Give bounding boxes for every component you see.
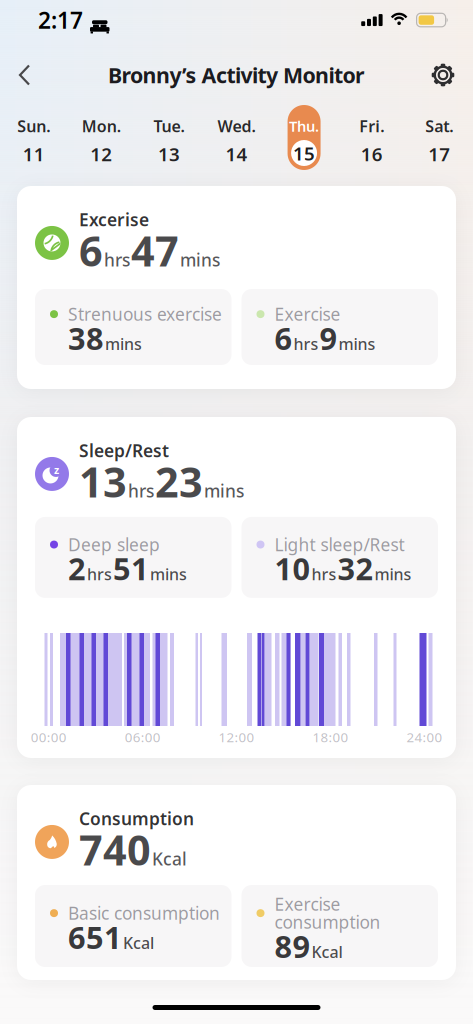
staticText: 89 [274,926,310,966]
staticText: hrs [293,333,318,354]
staticText: 18:00 [313,728,349,746]
staticText: 32 [337,548,373,589]
button[interactable]: Sat. [405,96,473,186]
staticText: hrs [104,248,130,271]
staticText: Excerise [79,208,149,231]
staticText: 740 [79,822,151,877]
staticText: 47 [131,223,179,278]
button[interactable]: Thu. [270,96,338,186]
staticText: mins [338,333,375,354]
staticText: Mon. [82,115,121,137]
button[interactable]: Wed. [203,96,270,186]
staticText: 10 [274,548,310,589]
staticText: 2:17 [38,5,83,35]
staticText: mins [374,563,411,585]
staticText: 51 [113,548,149,589]
button[interactable]: Mon. [68,96,135,186]
staticText: Fri. [359,115,384,137]
staticText: 9 [319,318,337,358]
button[interactable] [431,63,473,87]
staticText: hrs [87,563,112,585]
staticText: hrs [311,563,336,585]
staticText: Exercise consumption [274,893,380,934]
staticText: Sat. [425,115,453,137]
staticText: 651 [68,917,122,957]
staticText: 06:00 [125,728,161,746]
staticText: Thu. [289,116,319,136]
staticText: mins [150,563,187,585]
staticText: 12:00 [219,728,255,746]
staticText: 13 [79,454,127,509]
staticText: 00:00 [31,728,67,746]
staticText: 15 [293,141,315,166]
button[interactable]: Tue. [135,96,203,186]
staticText: Basic consumption [68,902,220,925]
staticText: Consumption [79,807,194,830]
staticText: Tue. [153,115,184,137]
staticText: 17 [428,142,450,166]
staticText: Kcal [152,847,187,870]
staticText: Kcal [123,932,154,953]
staticText: 23 [155,454,203,509]
staticText: 11 [23,142,45,166]
staticText: Bronny’s Activity Monitor [108,61,365,89]
staticText: mins [204,479,244,502]
staticText: 13 [158,142,180,166]
staticText: 16 [361,142,383,166]
button[interactable]: Sun. [0,96,68,186]
staticText: Strenuous exercise [68,303,222,326]
staticText: 38 [68,318,104,358]
staticText: Wed. [217,115,255,137]
staticText: Light sleep/Rest [274,533,404,556]
button[interactable] [0,64,30,85]
staticText: hrs [128,479,154,502]
staticText: 24:00 [407,728,443,746]
staticText: 6 [79,223,103,278]
staticText: mins [180,248,220,271]
staticText: mins [105,333,142,354]
staticText: Sleep/Rest [79,439,169,462]
staticText: 6 [274,318,292,358]
staticText: Deep sleep [68,533,160,556]
staticText: Sun. [17,115,50,137]
staticText: 14 [225,142,247,166]
staticText: 12 [90,142,112,166]
staticText: 2 [68,548,86,589]
staticText: Kcal [311,941,342,962]
staticText: z [54,463,59,477]
staticText: Exercise [274,303,340,326]
button[interactable]: Fri. [338,96,405,186]
